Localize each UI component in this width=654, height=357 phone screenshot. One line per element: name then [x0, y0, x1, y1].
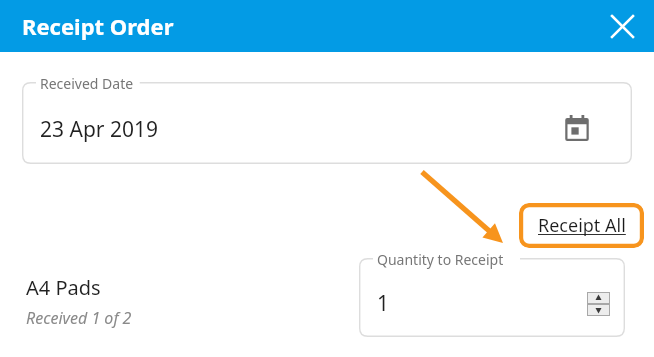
staticText: Receipt All: [538, 213, 626, 238]
staticText: A4 Pads: [26, 274, 101, 301]
staticText: Receipt Order: [22, 11, 174, 41]
button[interactable]: Close: [600, 4, 644, 48]
button[interactable]: Receipt All: [519, 203, 644, 248]
button[interactable]: Change quantity: [587, 292, 610, 316]
staticText: Received 1 of 2: [26, 307, 132, 329]
staticText: 23 Apr 2019: [40, 115, 158, 144]
staticText: Received Date: [40, 74, 134, 93]
button[interactable]: Pick date: [558, 110, 596, 148]
staticText: 1: [377, 289, 390, 318]
button[interactable]: Received Date: [22, 82, 632, 164]
staticText: Quantity to Receipt: [377, 250, 504, 269]
button[interactable]: Quantity to Receipt: [359, 258, 625, 337]
